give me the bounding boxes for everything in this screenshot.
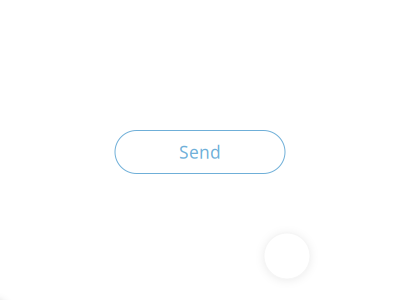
button[interactable]: Send: [115, 130, 285, 173]
staticText: Send: [179, 140, 221, 163]
